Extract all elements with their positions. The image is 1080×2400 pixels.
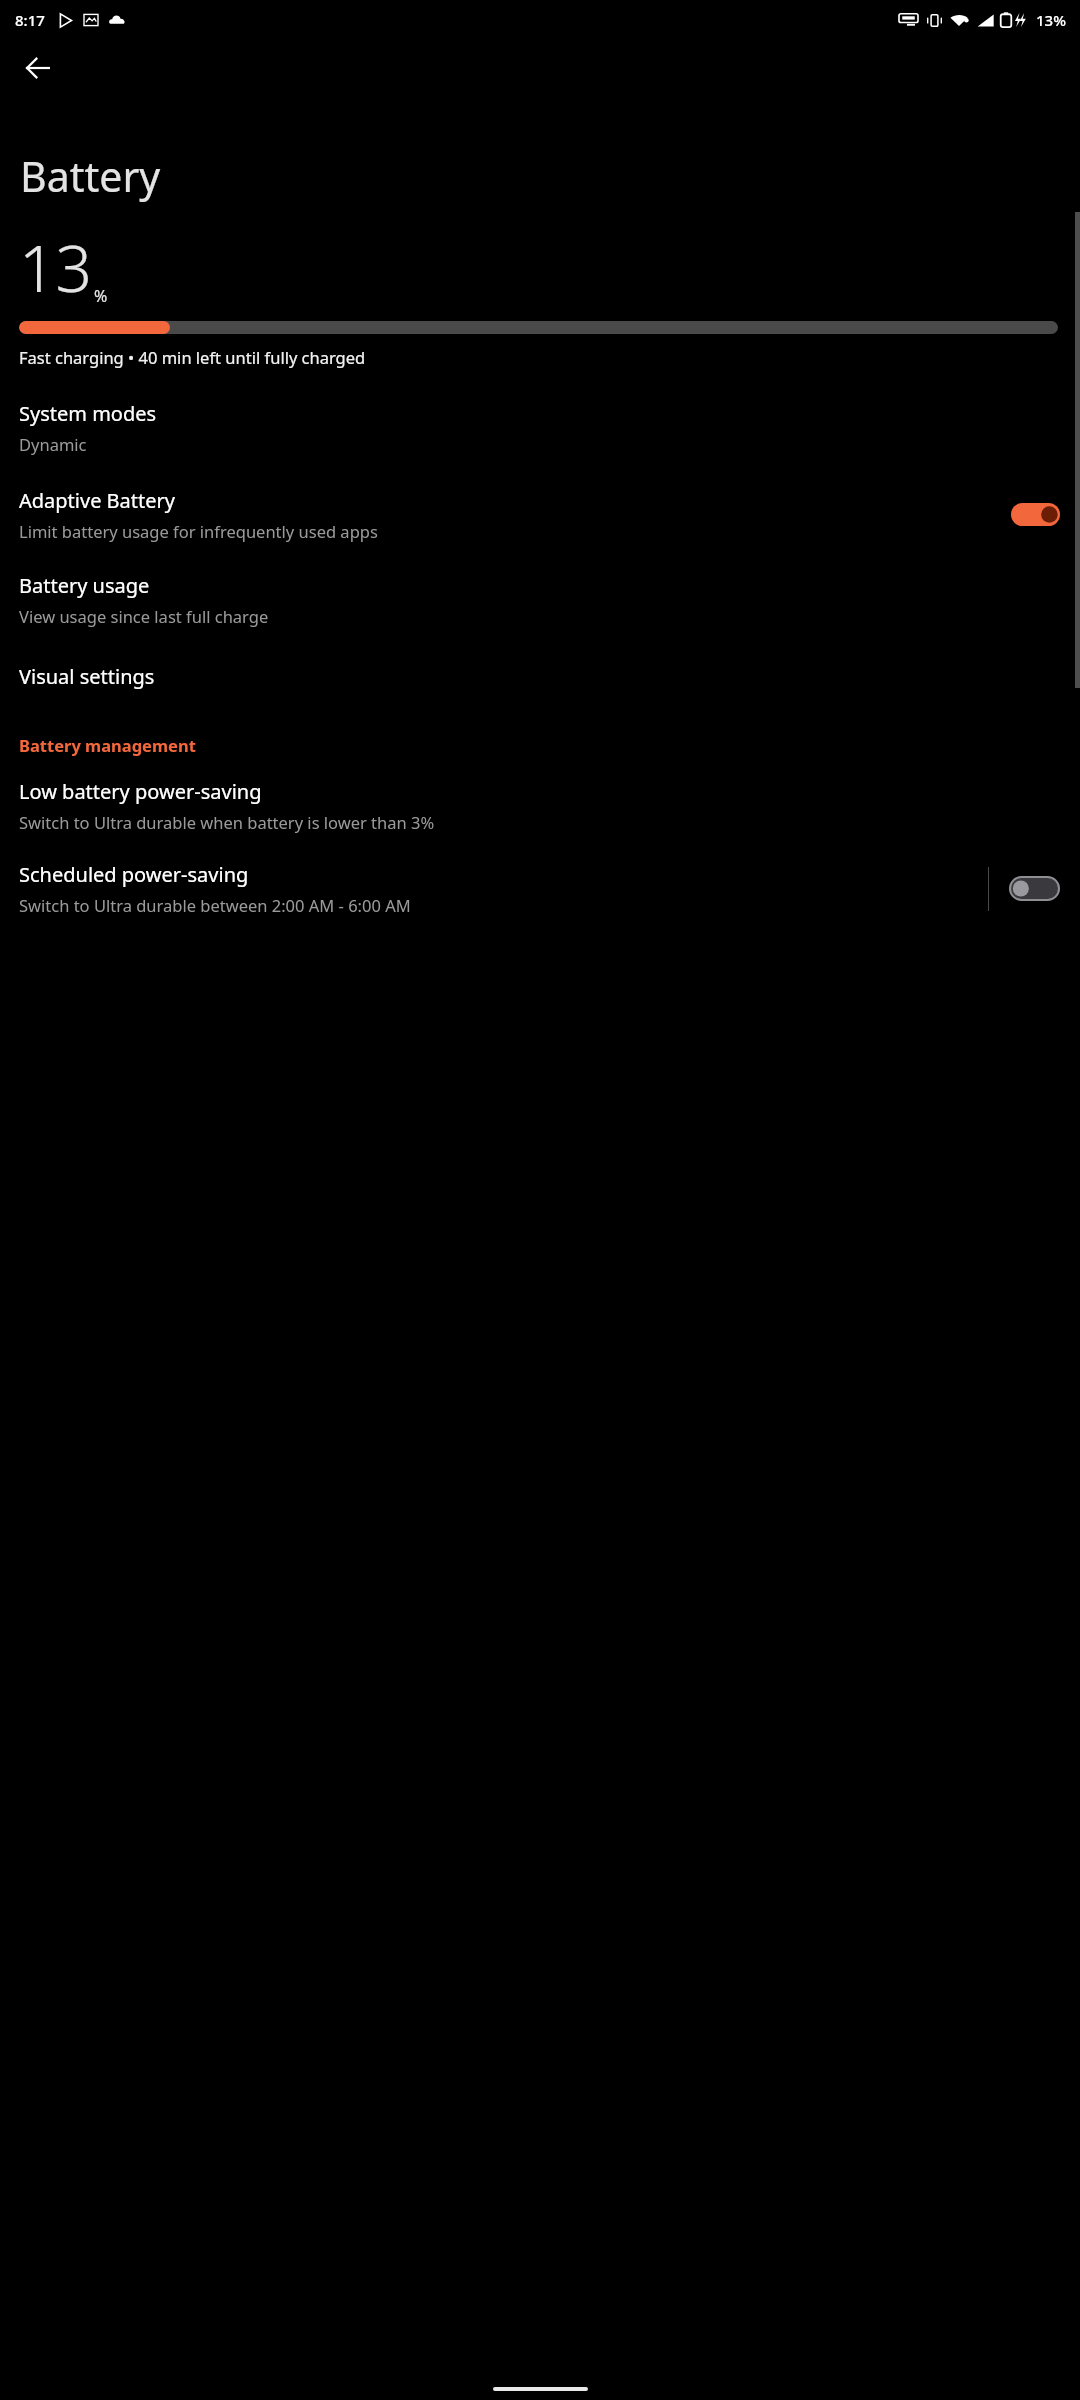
staticText: System modes — [19, 400, 157, 427]
staticText: Switch to Ultra durable between 2:00 AM … — [19, 894, 411, 916]
button[interactable]: Scheduled power-saving toggle — [1010, 877, 1059, 900]
staticText: 13 — [19, 224, 93, 311]
staticText: Fast charging • 40 min left until fully … — [19, 346, 366, 368]
staticText: Limit battery usage for infrequently use… — [19, 520, 378, 542]
button[interactable]: Low battery power-saving — [0, 772, 1080, 839]
staticText: View usage since last full charge — [19, 605, 269, 627]
button[interactable]: Back — [10, 40, 66, 96]
staticText: Battery usage — [19, 572, 150, 599]
staticText: Dynamic — [19, 433, 87, 455]
staticText: Scheduled power-saving — [19, 861, 249, 888]
button[interactable]: Adaptive Battery — [0, 481, 1080, 548]
button[interactable]: Scheduled power-saving — [0, 861, 1080, 916]
staticText: 8:17 — [15, 10, 45, 30]
staticText: Adaptive Battery — [19, 487, 176, 514]
button[interactable]: Visual settings — [0, 657, 1080, 696]
staticText: Battery — [20, 148, 161, 204]
staticText: Switch to Ultra durable when battery is … — [19, 811, 435, 833]
staticText: % — [94, 285, 108, 307]
staticText: Battery management — [19, 734, 196, 756]
button[interactable]: Adaptive Battery toggle — [1011, 503, 1060, 526]
staticText: Visual settings — [19, 663, 155, 690]
button[interactable]: System modes — [0, 394, 1080, 461]
staticText: 13% — [1036, 10, 1066, 30]
button[interactable]: Battery usage — [0, 566, 1080, 633]
staticText: Low battery power-saving — [19, 778, 262, 805]
